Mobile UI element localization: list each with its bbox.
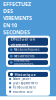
staticText: Mes virements xyxy=(14,54,34,58)
staticText: Virements programmes xyxy=(14,59,33,66)
staticText: Remboursement xyxy=(13,86,36,89)
button[interactable]: Mes beneficiaires xyxy=(8,47,48,52)
staticText: Historique xyxy=(14,72,35,77)
button[interactable]: Mes virements xyxy=(8,54,48,58)
button[interactable]: Virements programmes xyxy=(8,60,48,65)
button[interactable]: Salaire janvier xyxy=(8,77,48,81)
staticText: EFFECTUEZ DES VIREMENTS EN 10 SECONDES xyxy=(3,0,32,36)
button[interactable]: Assurance auto xyxy=(8,89,48,94)
button[interactable]: Historique xyxy=(8,72,48,77)
staticText: Effectuer un virement xyxy=(10,36,35,47)
staticText: Salaire janvier xyxy=(13,77,31,81)
button[interactable]: Remboursement xyxy=(8,85,48,89)
button[interactable]: Loyer appartement xyxy=(8,81,48,85)
staticText: Mes beneficiaires xyxy=(14,48,39,51)
button[interactable]: Effectuer un virement xyxy=(8,38,48,46)
staticText: Loyer appartement xyxy=(13,81,38,85)
staticText: Assurance auto xyxy=(13,90,33,93)
